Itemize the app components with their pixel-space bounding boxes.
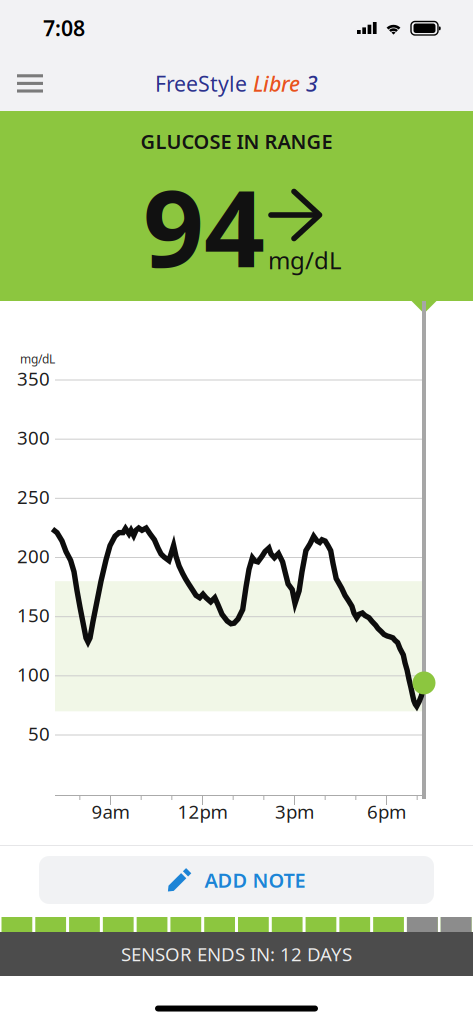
- staticText: FreeStyle: [155, 69, 247, 98]
- staticText: 7:08: [43, 14, 85, 42]
- staticText: Libre: [247, 69, 300, 98]
- button[interactable]: ADD NOTE: [39, 856, 434, 904]
- staticText: 50: [28, 721, 50, 746]
- staticText: 94: [143, 155, 265, 297]
- staticText: ADD NOTE: [204, 867, 305, 893]
- staticText: 350: [17, 366, 50, 391]
- staticText: 12pm: [177, 799, 227, 824]
- staticText: 3pm: [275, 799, 314, 824]
- staticText: 300: [17, 425, 50, 450]
- staticText: 250: [17, 484, 50, 509]
- staticText: GLUCOSE IN RANGE: [140, 128, 332, 155]
- staticText: 100: [17, 662, 50, 687]
- button[interactable]: Menu: [0, 56, 60, 111]
- staticText: 3: [300, 69, 318, 98]
- staticText: 200: [17, 543, 50, 568]
- staticText: mg/dL: [20, 351, 55, 367]
- staticText: 9am: [91, 799, 129, 824]
- staticText: SENSOR ENDS IN: 12 DAYS: [121, 942, 352, 966]
- staticText: 150: [17, 603, 50, 627]
- staticText: 6pm: [367, 799, 406, 824]
- staticText: mg/dL: [268, 244, 342, 276]
